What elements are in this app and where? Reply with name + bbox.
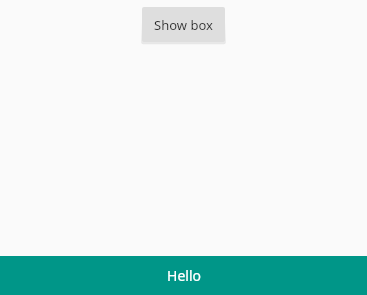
staticText: Show box [154, 16, 213, 34]
button[interactable]: Show box [142, 7, 225, 42]
staticText: Hello [167, 266, 201, 285]
button[interactable]: Hello [0, 256, 367, 295]
